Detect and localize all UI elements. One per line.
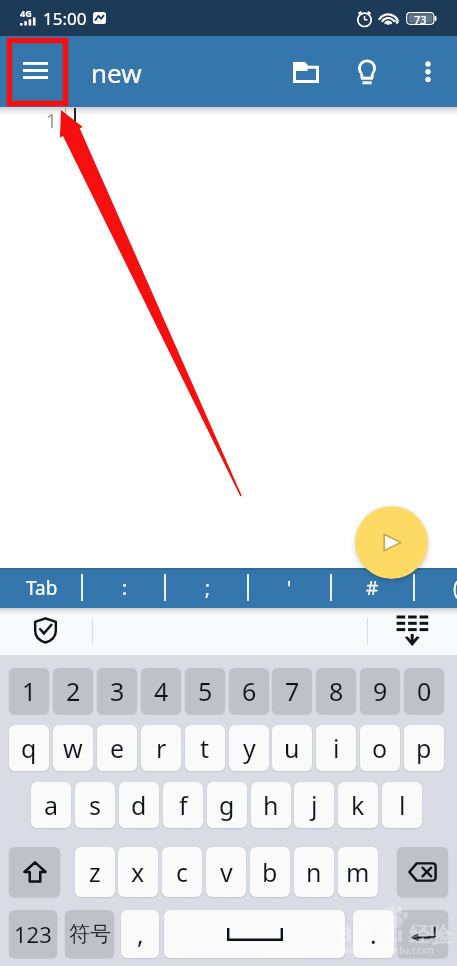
staticText: p	[416, 731, 432, 765]
staticText: w	[63, 731, 83, 765]
staticText: s	[89, 788, 101, 822]
staticText: c	[176, 855, 189, 889]
staticText: l	[399, 788, 406, 822]
button[interactable]: f	[163, 782, 203, 828]
button[interactable]: Tab	[0, 568, 83, 608]
staticText: 8	[329, 674, 344, 708]
button[interactable]: #	[331, 568, 414, 608]
staticText: '	[287, 575, 292, 601]
staticText: y	[243, 731, 256, 765]
button[interactable]: r	[141, 725, 181, 771]
staticText: ,	[137, 917, 144, 951]
staticText: n	[306, 855, 322, 889]
button[interactable]: Enter	[397, 910, 448, 958]
button[interactable]: d	[119, 782, 159, 828]
button[interactable]: 2	[53, 668, 93, 714]
button[interactable]: Security	[27, 611, 64, 649]
button[interactable]: 9	[360, 668, 400, 714]
staticText: 1	[46, 108, 57, 134]
button[interactable]: Run	[355, 506, 428, 579]
staticText: 123	[14, 919, 52, 949]
button[interactable]: 8	[316, 668, 356, 714]
button[interactable]: y	[229, 725, 269, 771]
button[interactable]: 1	[9, 668, 49, 714]
staticText: 9	[373, 674, 388, 708]
button[interactable]: :	[83, 568, 166, 608]
button[interactable]: ;	[166, 568, 249, 608]
button[interactable]: e	[97, 725, 137, 771]
staticText: 15:00	[43, 7, 87, 30]
staticText: 2	[66, 674, 81, 708]
button[interactable]: 5	[185, 668, 225, 714]
staticText: .	[370, 917, 377, 951]
button[interactable]: 4	[141, 668, 181, 714]
staticText: o	[372, 731, 388, 765]
staticText: 4G	[20, 7, 32, 19]
staticText: f	[179, 788, 188, 822]
button[interactable]: o	[360, 725, 400, 771]
button[interactable]: 6	[229, 668, 269, 714]
button[interactable]: n	[294, 847, 334, 897]
button[interactable]: (	[414, 568, 457, 608]
button[interactable]: w	[53, 725, 93, 771]
button[interactable]: ,	[121, 910, 159, 958]
button[interactable]: a	[31, 782, 71, 828]
staticText: 符号	[69, 921, 111, 947]
button[interactable]: z	[75, 847, 115, 897]
staticText: x	[131, 855, 145, 889]
button[interactable]: j	[294, 782, 334, 828]
staticText: #	[366, 575, 379, 601]
button[interactable]: l	[382, 782, 422, 828]
button[interactable]: Open folder	[280, 46, 332, 98]
button[interactable]: s	[75, 782, 115, 828]
staticText: new	[91, 55, 142, 90]
button[interactable]: p	[404, 725, 444, 771]
button[interactable]: More options	[403, 46, 455, 98]
staticText: z	[89, 855, 101, 889]
button[interactable]: h	[251, 782, 291, 828]
button[interactable]: .	[353, 910, 394, 958]
button[interactable]: 123	[9, 910, 57, 958]
button[interactable]: k	[338, 782, 378, 828]
staticText: b	[262, 855, 278, 889]
staticText: t	[200, 731, 210, 765]
button[interactable]: '	[248, 568, 331, 608]
button[interactable]: 3	[97, 668, 137, 714]
staticText: Tab	[26, 575, 58, 601]
staticText: a	[44, 788, 59, 822]
staticText: j	[311, 788, 318, 822]
staticText: q	[21, 731, 37, 765]
button[interactable]: Hide keyboard	[392, 612, 432, 650]
button[interactable]: q	[9, 725, 49, 771]
button[interactable]: 7	[272, 668, 312, 714]
staticText: h	[263, 788, 279, 822]
button[interactable]: v	[206, 847, 246, 897]
button[interactable]: Space	[164, 910, 345, 958]
button[interactable]: t	[185, 725, 225, 771]
staticText: m	[346, 855, 370, 889]
staticText: ;	[205, 575, 211, 601]
staticText: g	[219, 788, 235, 822]
staticText: e	[110, 731, 125, 765]
button[interactable]: Navigation menu	[11, 45, 63, 97]
button[interactable]: Backspace	[397, 847, 448, 897]
staticText: (	[453, 575, 457, 601]
staticText: 5	[198, 674, 213, 708]
staticText: d	[131, 788, 147, 822]
staticText: 7	[285, 674, 300, 708]
staticText: Bai du 经验	[338, 920, 451, 949]
button[interactable]: u	[272, 725, 312, 771]
button[interactable]: 0	[404, 668, 444, 714]
staticText: r	[156, 731, 167, 765]
staticText: 1	[22, 674, 37, 708]
button[interactable]: m	[338, 847, 378, 897]
button[interactable]: Hint	[341, 46, 393, 98]
button[interactable]: x	[118, 847, 158, 897]
button[interactable]: c	[162, 847, 202, 897]
button[interactable]: i	[316, 725, 356, 771]
button[interactable]: 符号	[65, 910, 114, 958]
button[interactable]: Shift	[9, 847, 60, 897]
button[interactable]: b	[250, 847, 290, 897]
button[interactable]: g	[207, 782, 247, 828]
staticText: k	[351, 788, 365, 822]
